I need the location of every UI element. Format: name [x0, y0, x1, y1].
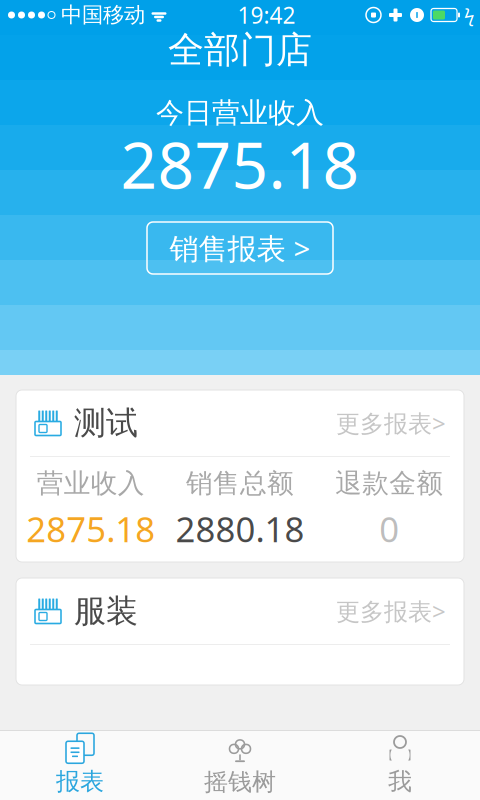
button[interactable]: 报表	[0, 731, 160, 800]
staticText: 19:42	[237, 0, 295, 30]
staticText: 报表	[56, 767, 104, 796]
staticText: 服装	[74, 591, 138, 631]
button[interactable]: 我	[320, 731, 480, 800]
button[interactable]: 摇钱树	[160, 731, 320, 800]
button[interactable]: 销售报表 >	[147, 222, 333, 274]
button[interactable]: 服装	[16, 578, 464, 685]
staticText: 销售总额	[186, 467, 294, 500]
staticText: 2875.18	[26, 506, 155, 552]
staticText: 测试	[74, 403, 138, 443]
staticText: 更多报表>	[336, 595, 446, 627]
staticText: 营业收入	[37, 467, 145, 500]
staticText: 2880.18	[175, 506, 304, 552]
staticText: 中国移动	[61, 2, 145, 28]
staticText: 销售报表 >	[169, 228, 310, 267]
staticText: 退款金额	[335, 467, 443, 500]
staticText: 全部门店	[168, 28, 312, 72]
staticText: 0	[379, 506, 399, 552]
staticText: 摇钱树	[204, 767, 276, 797]
button[interactable]: 测试	[16, 390, 464, 562]
staticText: ϟ	[464, 3, 474, 27]
staticText: 我	[388, 767, 412, 796]
staticText: 更多报表>	[336, 407, 446, 439]
staticText: 2875.18	[120, 121, 359, 206]
staticText: 今日营业收入	[156, 96, 324, 130]
